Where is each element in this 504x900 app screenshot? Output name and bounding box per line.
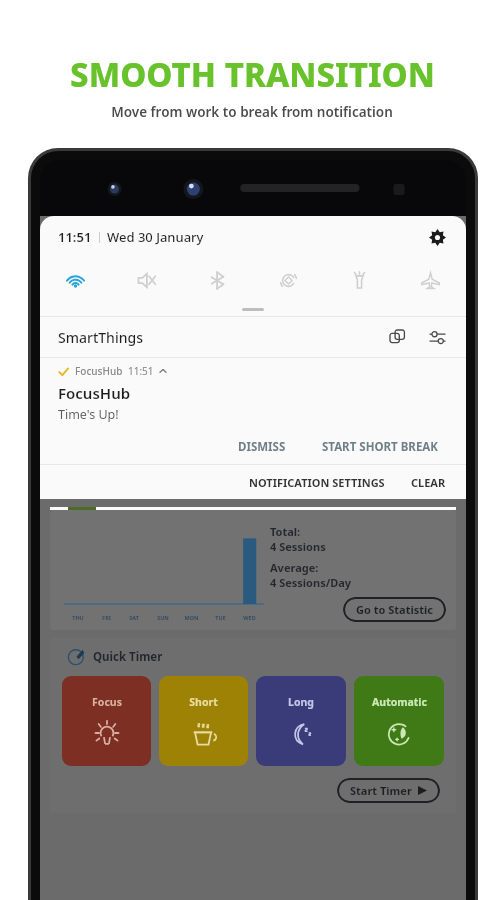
- staticText: Go to Statistic: [356, 602, 433, 617]
- staticText: FocusHub: [75, 364, 123, 378]
- button[interactable]: Long: [256, 676, 346, 766]
- staticText: Long: [288, 695, 314, 709]
- staticText: Time's Up!: [58, 406, 119, 423]
- staticText: THU: [72, 614, 84, 621]
- staticText: Move from work to break from notificatio…: [111, 103, 393, 121]
- staticText: TUE: [215, 614, 226, 621]
- staticText: SAT: [129, 614, 139, 621]
- staticText: Average:: [270, 560, 319, 575]
- button[interactable]: Start Timer: [337, 778, 440, 803]
- button[interactable]: Wi-Fi: [40, 258, 111, 302]
- button[interactable]: CLEAR: [405, 469, 452, 496]
- staticText: SUN: [157, 614, 169, 621]
- button[interactable]: Settings: [424, 224, 450, 250]
- staticText: DISMISS: [238, 439, 286, 455]
- staticText: Short: [189, 695, 218, 709]
- staticText: Total:: [270, 524, 301, 539]
- staticText: 4 Sessions/Day: [270, 575, 352, 590]
- staticText: Start Timer: [350, 783, 412, 798]
- button[interactable]: Focus: [62, 676, 151, 766]
- button[interactable]: Airplane mode: [395, 258, 466, 302]
- button[interactable]: Bluetooth: [182, 258, 253, 302]
- button[interactable]: START SHORT BREAK: [312, 433, 448, 461]
- button[interactable]: NOTIFICATION SETTINGS: [241, 469, 393, 496]
- staticText: NOTIFICATION SETTINGS: [249, 475, 385, 490]
- button[interactable]: DISMISS: [226, 433, 298, 461]
- button[interactable]: Quick settings: [424, 324, 450, 350]
- button[interactable]: Auto rotate: [253, 258, 324, 302]
- staticText: Quick Timer: [93, 649, 163, 665]
- staticText: Automatic: [372, 695, 427, 709]
- staticText: MON: [184, 614, 199, 621]
- staticText: FocusHub: [58, 383, 131, 403]
- staticText: 11:51: [58, 228, 92, 246]
- staticText: FRI: [102, 614, 111, 621]
- staticText: 11:51: [128, 364, 154, 378]
- staticText: CLEAR: [411, 475, 446, 490]
- staticText: 4 Sessions: [270, 539, 326, 554]
- button[interactable]: Go to Statistic: [343, 597, 446, 622]
- button[interactable]: Automatic: [354, 676, 444, 766]
- staticText: SMOOTH TRANSITION: [70, 52, 435, 97]
- staticText: WED: [243, 614, 256, 621]
- staticText: Focus: [92, 695, 122, 709]
- button[interactable]: Flashlight: [324, 258, 395, 302]
- staticText: START SHORT BREAK: [322, 439, 438, 455]
- button[interactable]: Short: [159, 676, 248, 766]
- button[interactable]: Sound off: [111, 258, 182, 302]
- staticText: SmartThings: [58, 328, 143, 347]
- staticText: Wed 30 January: [107, 228, 204, 246]
- button[interactable]: Devices: [384, 324, 410, 350]
